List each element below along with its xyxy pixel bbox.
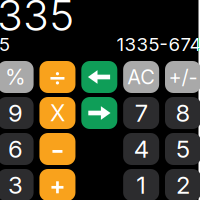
button[interactable]: +/- bbox=[165, 61, 200, 93]
staticText: AC bbox=[127, 65, 155, 89]
button[interactable]: 6 bbox=[0, 133, 34, 165]
button[interactable]: Backspace bbox=[81, 61, 117, 93]
staticText: 5 bbox=[0, 33, 10, 56]
button[interactable]: 2 bbox=[165, 169, 200, 200]
staticText: % bbox=[5, 64, 26, 90]
button[interactable]: Divide bbox=[39, 61, 75, 93]
button[interactable]: 8 bbox=[165, 97, 200, 129]
staticText: 1 bbox=[136, 170, 146, 199]
staticText: +/- bbox=[168, 65, 197, 89]
staticText: 2 bbox=[176, 170, 190, 199]
staticText: X bbox=[50, 99, 65, 127]
button[interactable]: Minus bbox=[39, 133, 75, 165]
button[interactable]: % bbox=[0, 61, 34, 93]
staticText: 335 bbox=[0, 0, 74, 41]
staticText: 5 bbox=[176, 134, 190, 163]
button[interactable]: 9 bbox=[0, 97, 34, 129]
staticText: 7 bbox=[135, 98, 148, 127]
staticText: 8 bbox=[175, 98, 190, 127]
button[interactable]: 3 bbox=[0, 169, 34, 200]
button[interactable]: 7 bbox=[123, 97, 159, 129]
button[interactable]: 4 bbox=[123, 133, 159, 165]
button[interactable]: 5 bbox=[165, 133, 200, 165]
staticText: 6 bbox=[8, 134, 23, 163]
staticText: 3 bbox=[8, 170, 23, 199]
button[interactable]: 1 bbox=[123, 169, 159, 200]
staticText: 9 bbox=[8, 98, 23, 127]
button[interactable]: X bbox=[39, 97, 75, 129]
button[interactable]: Plus bbox=[39, 169, 75, 200]
button[interactable]: Enter bbox=[81, 97, 117, 129]
button[interactable]: AC bbox=[123, 61, 159, 93]
staticText: 1335-674 bbox=[116, 33, 200, 56]
staticText: 4 bbox=[134, 134, 149, 163]
